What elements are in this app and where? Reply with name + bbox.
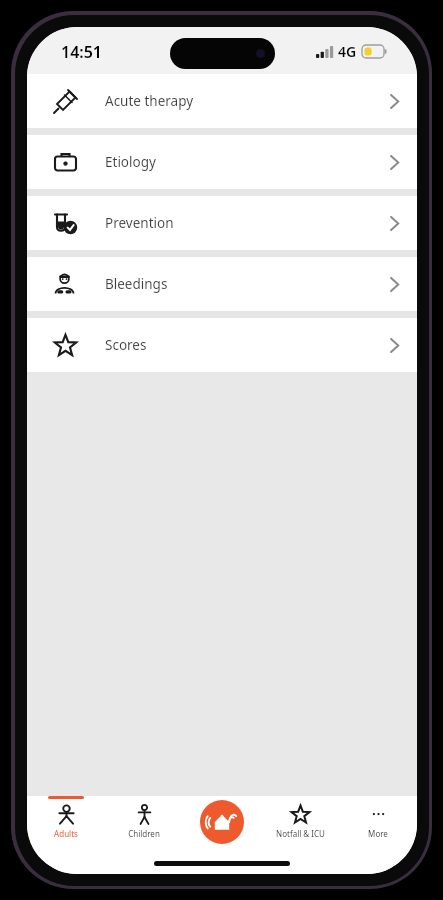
button[interactable]: Prevention <box>27 196 417 250</box>
staticText: Prevention <box>105 214 390 232</box>
button[interactable]: Acute therapy <box>27 74 417 128</box>
button[interactable]: More <box>339 796 417 852</box>
button[interactable]: Notfall & ICU <box>261 796 339 852</box>
staticText: Etiology <box>105 153 390 171</box>
staticText: 14:51 <box>61 41 103 63</box>
button[interactable]: Adults <box>27 796 105 852</box>
other: More <box>368 804 389 825</box>
staticText: Scores <box>105 336 390 354</box>
button[interactable]: Emergency <box>200 800 244 844</box>
button[interactable]: Scores <box>27 318 417 372</box>
staticText: 4G <box>338 42 357 61</box>
button[interactable]: Bleedings <box>27 257 417 311</box>
button[interactable]: Children <box>105 796 183 852</box>
staticText: Bleedings <box>105 275 390 293</box>
staticText: Acute therapy <box>105 92 390 110</box>
button[interactable]: Etiology <box>27 135 417 189</box>
staticText: Notfall & ICU <box>276 828 325 839</box>
staticText: Adults <box>54 828 78 839</box>
staticText: Children <box>128 828 160 839</box>
staticText: More <box>368 828 388 839</box>
